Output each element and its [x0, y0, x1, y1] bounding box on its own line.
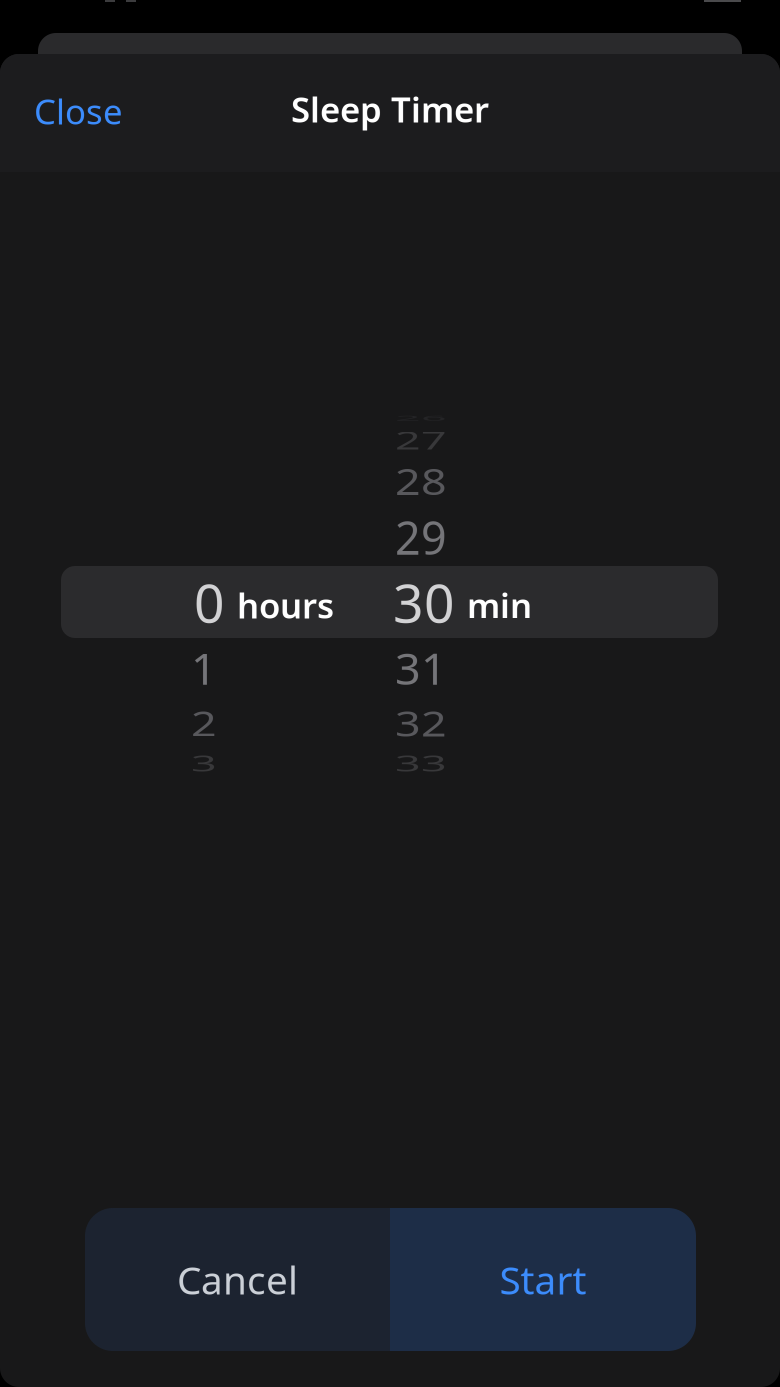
staticText: 2 — [186, 688, 217, 758]
staticText: 30 — [393, 567, 455, 637]
staticText: Start — [499, 1254, 586, 1305]
staticText: 32 — [385, 688, 447, 758]
staticText: 33 — [385, 728, 447, 798]
staticText: 26 — [385, 383, 447, 453]
staticText: 27 — [385, 405, 447, 475]
staticText: 1 — [186, 633, 217, 703]
staticText: 0 — [194, 567, 225, 637]
button[interactable]: Minutes, 30 — [391, 392, 718, 812]
staticText: 3 — [186, 728, 217, 798]
staticText: hours — [237, 582, 334, 628]
staticText: 29 — [385, 502, 447, 572]
staticText: Close — [34, 88, 123, 134]
staticText: 28 — [385, 446, 447, 516]
staticText: Sleep Timer — [291, 86, 489, 132]
button[interactable]: Close — [0, 74, 178, 148]
staticText: Cancel — [177, 1254, 298, 1305]
button[interactable]: Cancel — [85, 1208, 390, 1351]
staticText: min — [467, 582, 532, 628]
button[interactable]: Start — [390, 1208, 696, 1351]
staticText: 31 — [385, 633, 447, 703]
button[interactable]: Hours, 0 — [61, 392, 391, 812]
